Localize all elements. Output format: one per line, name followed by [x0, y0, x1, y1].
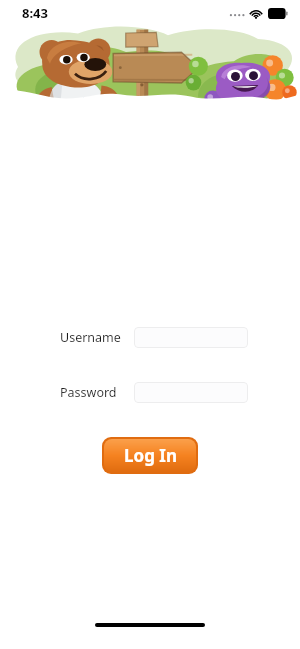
staticText: Username: [60, 329, 134, 346]
staticText: Password: [60, 384, 134, 401]
staticText: 8:43: [22, 4, 48, 22]
button[interactable]: Log In: [104, 439, 196, 472]
staticText: Log In: [124, 444, 177, 467]
button[interactable]: [134, 327, 248, 348]
button[interactable]: [134, 382, 248, 403]
